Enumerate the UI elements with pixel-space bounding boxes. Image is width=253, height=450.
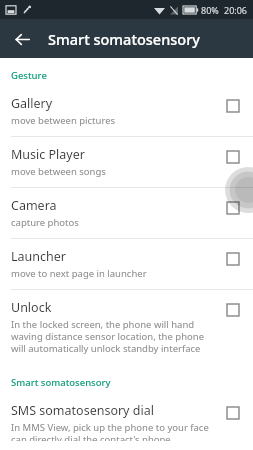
button[interactable]: Gallery	[0, 86, 253, 136]
button[interactable]: Toggle Music Player	[223, 147, 243, 167]
button[interactable]: Toggle Camera	[223, 198, 243, 218]
staticText: Gallery	[11, 95, 53, 112]
button[interactable]: Music Player	[0, 137, 253, 187]
staticText: Gesture	[11, 69, 47, 82]
staticText: Smart somatosensory	[48, 29, 200, 49]
staticText: move between pictures	[11, 114, 116, 127]
staticText: move between songs	[11, 165, 106, 178]
button[interactable]: Camera	[0, 188, 253, 238]
button[interactable]: Launcher	[0, 239, 253, 289]
staticText: Unlock	[11, 299, 52, 316]
button[interactable]: Toggle Launcher	[223, 249, 243, 269]
button[interactable]: Back	[9, 26, 35, 52]
staticText: In the locked screen, the phone will han…	[11, 318, 215, 355]
staticText: In MMS View, pick up the phone to your f…	[11, 421, 215, 441]
staticText: move to next page in launcher	[11, 267, 147, 280]
button[interactable]: Unlock	[0, 290, 253, 364]
staticText: Camera	[11, 197, 57, 214]
staticText: Smart somatosensory	[11, 376, 111, 389]
staticText: 20:06	[224, 4, 248, 16]
button[interactable]: Toggle Unlock	[223, 300, 243, 320]
staticText: Music Player	[11, 146, 85, 163]
button[interactable]: SMS somatosensory dial	[0, 393, 253, 450]
staticText: capture photos	[11, 216, 79, 229]
staticText: 80%	[201, 4, 219, 16]
staticText: Launcher	[11, 248, 66, 265]
button[interactable]: Toggle Gallery	[223, 96, 243, 116]
button[interactable]: Assistive touch	[225, 167, 253, 213]
button[interactable]: Toggle SMS somatosensory dial	[223, 403, 243, 423]
staticText: SMS somatosensory dial	[11, 402, 154, 419]
